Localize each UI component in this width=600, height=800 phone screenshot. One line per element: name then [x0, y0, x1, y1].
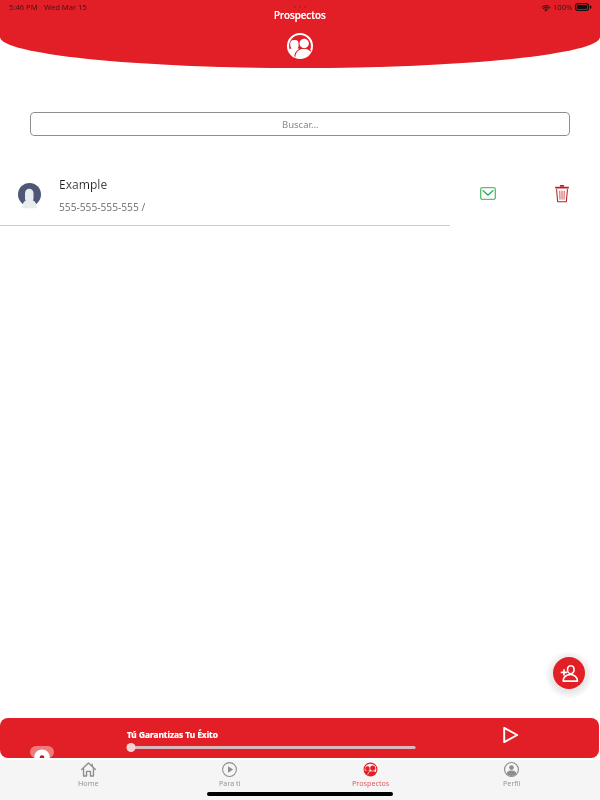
button[interactable]: Para ti — [159, 760, 300, 788]
button[interactable]: Example — [0, 168, 600, 225]
staticText: Tú Garantizas Tu Éxito — [127, 729, 218, 740]
button[interactable]: Play — [498, 723, 522, 747]
button[interactable]: Tú Garantizas Tu Éxito — [0, 718, 599, 758]
staticText: Prospectos — [274, 9, 326, 22]
button[interactable]: Add prospect — [553, 657, 585, 689]
staticText: Home — [78, 778, 99, 788]
button[interactable]: Prospects — [285, 31, 315, 61]
button[interactable]: Delete — [544, 175, 580, 211]
staticText: Para ti — [219, 778, 241, 788]
button[interactable]: Perfil — [441, 760, 582, 788]
staticText: 100% — [553, 2, 573, 12]
button[interactable]: Home — [18, 760, 159, 788]
staticText: Perfil — [503, 778, 521, 788]
button[interactable]: Buscar... — [30, 112, 570, 136]
staticText: 5:46 PM — [9, 2, 38, 12]
staticText: 555-555-555-555 / — [59, 200, 146, 214]
staticText: Wed Mar 15 — [44, 2, 87, 12]
button[interactable]: Prospectos — [300, 760, 441, 788]
staticText: Prospectos — [352, 778, 390, 788]
staticText: Example — [59, 176, 108, 192]
staticText: Buscar... — [282, 118, 319, 131]
button[interactable]: Send email — [470, 175, 506, 211]
